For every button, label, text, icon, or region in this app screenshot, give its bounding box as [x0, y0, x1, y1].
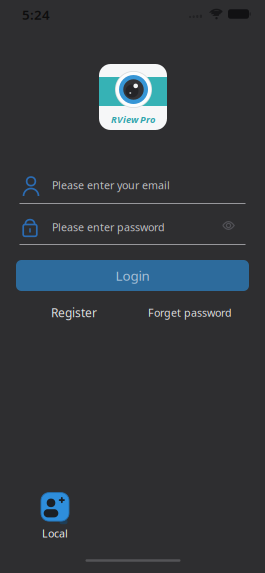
button[interactable]: Local [41, 493, 69, 540]
button[interactable]: Show password [219, 218, 237, 232]
staticText: 5:24 [22, 6, 50, 23]
button[interactable]: Forget password [148, 305, 232, 320]
staticText: Please enter password [52, 220, 165, 234]
staticText: Login [115, 267, 149, 284]
staticText: Register [51, 304, 97, 320]
button[interactable]: Login [16, 260, 249, 291]
staticText: RView Pro [111, 113, 155, 126]
button[interactable]: Register [51, 304, 97, 320]
staticText: Forget password [148, 305, 232, 320]
staticText: Local [42, 526, 68, 540]
staticText: Please enter your email [52, 178, 170, 192]
